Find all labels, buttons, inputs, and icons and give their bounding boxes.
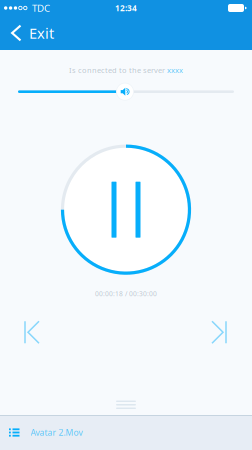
button[interactable]: Avatar 2.Mov bbox=[0, 415, 252, 450]
staticText: xxxx bbox=[167, 65, 183, 75]
staticText: TDC bbox=[32, 1, 50, 15]
staticText: Avatar 2.Mov bbox=[30, 427, 82, 438]
button[interactable]: Pause bbox=[71, 155, 181, 265]
staticText: 00:00:18 / 00:30:00 bbox=[95, 289, 157, 298]
staticText: Exit bbox=[29, 23, 54, 43]
staticText: 12:34 bbox=[115, 2, 137, 14]
button[interactable]: Exit bbox=[0, 16, 62, 50]
button[interactable]: Next bbox=[201, 310, 238, 354]
button[interactable]: Previous bbox=[14, 310, 51, 354]
staticText: Is connected to the server bbox=[69, 65, 167, 75]
